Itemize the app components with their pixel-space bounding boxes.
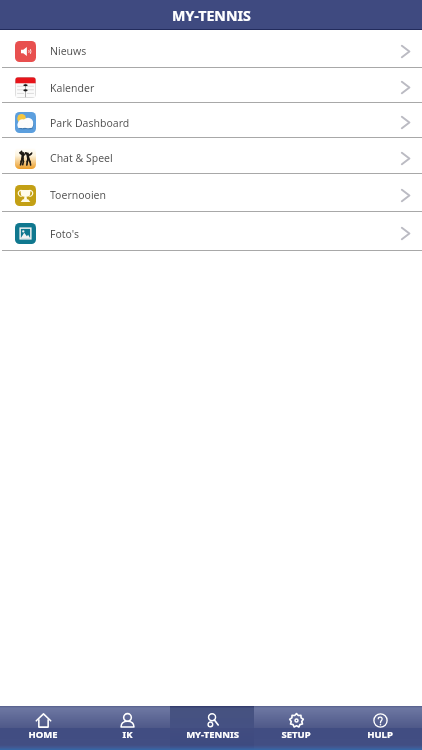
other: Setup <box>289 713 304 728</box>
other: Open <box>399 227 412 240</box>
other: Open <box>399 45 412 58</box>
button[interactable]: Chat & Speel <box>0 138 422 174</box>
button[interactable]: Setup <box>254 706 338 750</box>
other: Open <box>399 81 412 94</box>
other: Hulp <box>373 713 388 728</box>
staticText: HULP <box>367 728 393 741</box>
button[interactable]: Foto's <box>0 212 422 251</box>
staticText: HOME <box>28 728 58 741</box>
staticText: IK <box>122 728 133 741</box>
staticText: Chat & Speel <box>50 151 113 165</box>
other: Open <box>399 152 412 165</box>
button[interactable]: Nieuws <box>0 30 422 68</box>
button[interactable]: Kalender <box>0 68 422 103</box>
button[interactable]: Hulp <box>338 706 422 750</box>
other: Ik <box>120 713 135 728</box>
staticText: SETUP <box>281 728 311 741</box>
staticText: MY-TENNIS <box>186 728 239 741</box>
staticText: Kalender <box>50 81 95 95</box>
staticText: Nieuws <box>50 44 87 58</box>
button[interactable]: Ik <box>85 706 170 750</box>
other: My-Tennis <box>205 713 220 728</box>
staticText: Park Dashboard <box>50 116 130 130</box>
button[interactable]: My-Tennis <box>170 706 254 750</box>
other: Home <box>36 713 51 728</box>
staticText: Foto's <box>50 227 79 241</box>
other: Open <box>399 116 412 129</box>
staticText: Toernooien <box>50 188 107 202</box>
button[interactable]: Toernooien <box>0 174 422 212</box>
staticText: MY-TENNIS <box>172 6 251 25</box>
other: Open <box>399 189 412 202</box>
button[interactable]: Park Dashboard <box>0 103 422 138</box>
button[interactable]: Home <box>0 706 85 750</box>
